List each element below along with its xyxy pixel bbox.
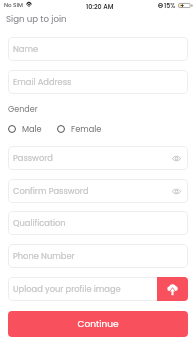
staticText: Male: [22, 123, 42, 134]
staticText: Confirm Password: [13, 185, 89, 197]
button[interactable]: Password: [8, 146, 188, 170]
staticText: Email Address: [13, 76, 72, 88]
button[interactable]: Show password: [171, 153, 182, 164]
button[interactable]: Name: [8, 37, 188, 61]
button[interactable]: Continue: [8, 311, 188, 337]
button[interactable]: Show password: [171, 186, 182, 197]
staticText: Password: [13, 152, 53, 164]
staticText: Phone Number: [13, 250, 75, 262]
button[interactable]: Phone Number: [8, 244, 188, 268]
button[interactable]: Qualification: [8, 211, 188, 235]
staticText: 15%: [164, 1, 176, 10]
staticText: Female: [71, 123, 102, 134]
staticText: Sign up to join: [6, 13, 67, 25]
button[interactable]: Email Address: [8, 70, 188, 94]
staticText: Name: [13, 43, 39, 55]
staticText: Qualification: [13, 217, 66, 229]
button[interactable]: Female: [57, 123, 102, 134]
staticText: 10:20 AM: [86, 2, 114, 11]
button[interactable]: Upload image: [157, 277, 188, 301]
button[interactable]: Upload your profile image: [8, 277, 188, 301]
button[interactable]: Confirm Password: [8, 179, 188, 203]
staticText: Continue: [77, 318, 119, 331]
staticText: Upload your profile image: [13, 283, 121, 295]
staticText: Gender: [8, 104, 38, 115]
staticText: No SIM: [4, 1, 23, 9]
button[interactable]: Male: [8, 123, 42, 134]
